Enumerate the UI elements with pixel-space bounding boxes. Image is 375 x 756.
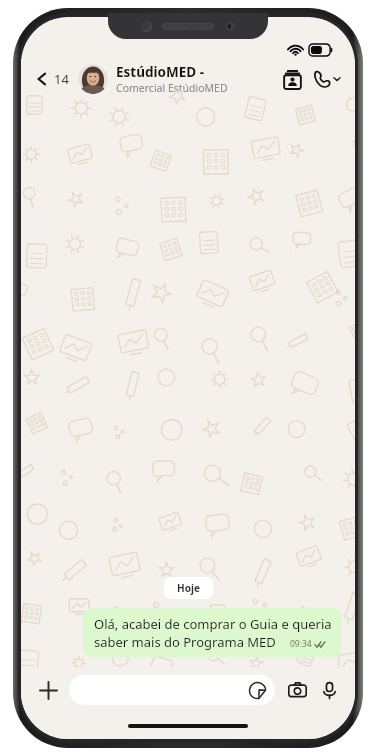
button[interactable]: Voice call [311,65,343,93]
button[interactable]: Attach [33,675,63,705]
staticText: 14 [54,70,69,88]
staticText: EstúdioMED - Comercial [116,63,271,81]
staticText: Olá, acabei de comprar o Guia e queria [94,615,332,633]
staticText: 09:34 [290,638,312,650]
button[interactable] [69,675,275,705]
button[interactable]: Camera [283,676,311,704]
button[interactable]: Hoje [164,577,213,599]
staticText: Hoje [177,581,200,595]
button[interactable]: Olá, acabei de comprar o Guia e queria [83,608,341,657]
button[interactable]: EstúdioMED - Comercial [116,63,271,95]
button[interactable]: Back [31,66,73,92]
button[interactable]: Video call [277,64,307,94]
button[interactable]: Voice message [315,676,343,704]
button[interactable]: Profile photo [78,64,108,94]
staticText: Comercial EstúdioMED [116,81,228,95]
staticText: saber mais do Programa MED [94,633,276,651]
